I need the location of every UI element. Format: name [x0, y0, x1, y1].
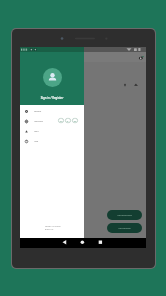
staticText: Help [34, 140, 39, 143]
staticText: Version 1.9.3-prod [45, 225, 61, 227]
staticText: Add observation [117, 214, 132, 217]
button[interactable]: DE [72, 118, 78, 123]
button[interactable]: Help [20, 136, 84, 146]
button[interactable]: EN [58, 118, 64, 123]
staticText: IT [67, 120, 69, 122]
staticText: Settings [34, 110, 42, 113]
staticText: Sign in / Register [20, 96, 84, 100]
staticText: Language [34, 120, 43, 123]
button[interactable]: Tools [20, 126, 84, 136]
staticText: EN [60, 120, 63, 122]
staticText: Tools [34, 130, 39, 133]
button[interactable]: Language [20, 116, 84, 126]
button[interactable]: IT [65, 118, 71, 123]
button[interactable]: Add observation [107, 210, 142, 220]
staticText: DE [74, 120, 77, 122]
button[interactable]: Account [43, 68, 62, 87]
button[interactable]: Settings [20, 106, 84, 116]
staticText: Add specimen [118, 227, 131, 230]
button[interactable]: Cloud [134, 83, 138, 87]
button[interactable]: Add specimen [107, 223, 142, 233]
button[interactable]: Storage [123, 83, 127, 87]
staticText: Build: 176 [45, 228, 54, 230]
button[interactable]: Sync [137, 54, 144, 61]
